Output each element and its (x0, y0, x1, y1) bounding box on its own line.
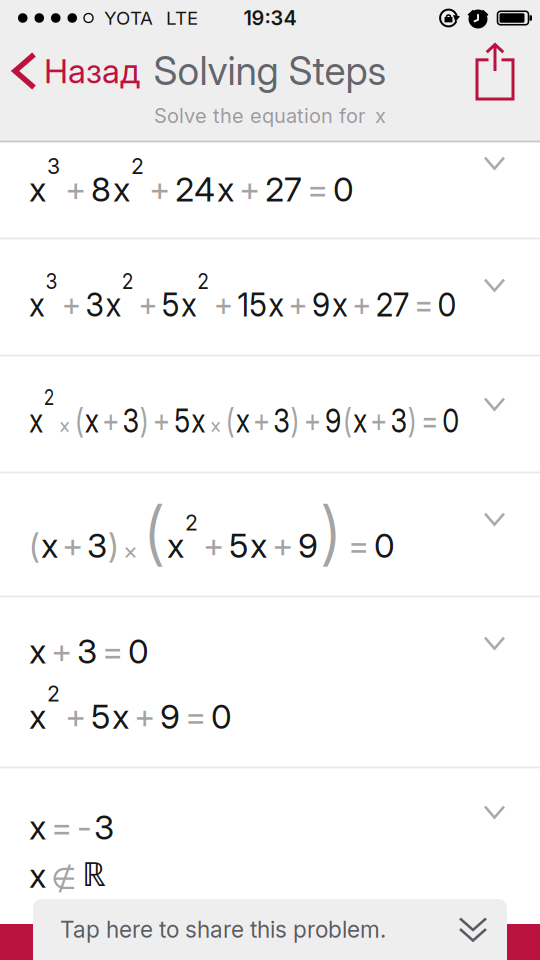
staticText: ∉ (51, 862, 77, 895)
staticText: ( (29, 526, 40, 565)
staticText: 0 (374, 526, 395, 565)
staticText: = (185, 697, 206, 736)
button[interactable]: ( (0, 474, 540, 596)
staticText: 2 (47, 385, 60, 410)
staticText: 27 (265, 170, 302, 209)
staticText: 5 (175, 285, 194, 324)
staticText: + (314, 285, 335, 324)
staticText: x (112, 697, 129, 736)
staticText: + (149, 170, 170, 209)
staticText: x (362, 285, 379, 324)
button[interactable]: Назад (0, 51, 140, 91)
staticText: × (249, 412, 264, 439)
staticText: x (281, 401, 298, 440)
staticText: ) (348, 401, 359, 440)
staticText: + (65, 697, 86, 736)
button[interactable]: x (0, 769, 540, 960)
staticText: 0 (211, 697, 232, 736)
staticText: x (29, 856, 46, 895)
staticText: x (29, 697, 46, 736)
staticText: + (203, 526, 224, 565)
staticText: + (272, 526, 293, 565)
staticText: x (250, 526, 267, 565)
staticText: + (364, 401, 385, 440)
staticText: Назад (44, 51, 140, 91)
staticText: 3 (143, 401, 163, 440)
button[interactable]: x (0, 598, 540, 767)
staticText: 9 (160, 697, 180, 736)
staticText: = (348, 526, 369, 565)
staticText: 5 (206, 401, 225, 440)
staticText: 24 (175, 170, 215, 209)
staticText: = (51, 808, 72, 847)
staticText: ( (412, 401, 423, 440)
staticText: - (77, 808, 92, 847)
button[interactable]: Share (477, 43, 540, 99)
staticText: x (29, 285, 46, 324)
staticText: 0 (478, 285, 499, 324)
button[interactable]: Tap here to share this problem. (33, 899, 507, 960)
staticText: LTE (166, 7, 198, 29)
staticText: 5 (91, 697, 110, 736)
staticText: 2 (47, 681, 60, 706)
staticText: ( (142, 492, 166, 573)
staticText: 3 (470, 401, 490, 440)
staticText: YOTA (104, 7, 153, 29)
staticText: 3 (47, 154, 60, 179)
staticText: 27 (410, 285, 447, 324)
staticText: x (97, 401, 114, 440)
staticText: Solving Steps (153, 48, 386, 94)
staticText: x (217, 170, 234, 209)
staticText: 2 (131, 154, 144, 179)
staticText: 0 (333, 170, 354, 209)
staticText: 3 (87, 526, 107, 565)
staticText: Solve the equation for x (154, 104, 386, 128)
staticText: + (51, 632, 72, 671)
staticText: + (384, 285, 405, 324)
button[interactable]: x (0, 143, 540, 238)
staticText: + (62, 526, 83, 565)
staticText: + (232, 285, 253, 324)
staticText: 2 (185, 510, 198, 535)
staticText: x (29, 808, 46, 847)
staticText: ) (491, 401, 502, 440)
staticText: + (149, 285, 170, 324)
staticText: 3 (94, 808, 114, 847)
staticText: 9 (298, 526, 318, 565)
staticText: + (445, 401, 466, 440)
staticText: 9 (390, 401, 410, 440)
staticText: + (302, 401, 323, 440)
staticText: ( (85, 401, 96, 440)
button[interactable]: x (0, 357, 540, 472)
staticText: x (113, 170, 130, 209)
staticText: = (307, 170, 328, 209)
staticText: x (292, 285, 309, 324)
button[interactable]: x (0, 240, 540, 355)
staticText: + (118, 401, 139, 440)
staticText: 5 (229, 526, 248, 565)
staticText: Tap here to share this problem. (60, 916, 386, 943)
staticText: x (167, 526, 184, 565)
staticText: x (29, 632, 46, 671)
staticText: 8 (91, 170, 111, 209)
staticText: 9 (340, 285, 360, 324)
staticText: 3 (327, 401, 347, 440)
staticText: ( (269, 401, 280, 440)
staticText: ) (319, 492, 343, 573)
staticText: + (65, 170, 86, 209)
staticText: x (113, 285, 130, 324)
staticText: + (134, 697, 155, 736)
staticText: + (65, 285, 86, 324)
staticText: x (196, 285, 213, 324)
staticText: ) (164, 401, 175, 440)
staticText: x (29, 401, 46, 440)
staticText: 3 (77, 632, 97, 671)
staticText: + (239, 170, 260, 209)
staticText: x (29, 170, 46, 209)
staticText: 0 (128, 632, 149, 671)
staticText: ℝ (82, 851, 106, 895)
staticText: = (102, 632, 123, 671)
